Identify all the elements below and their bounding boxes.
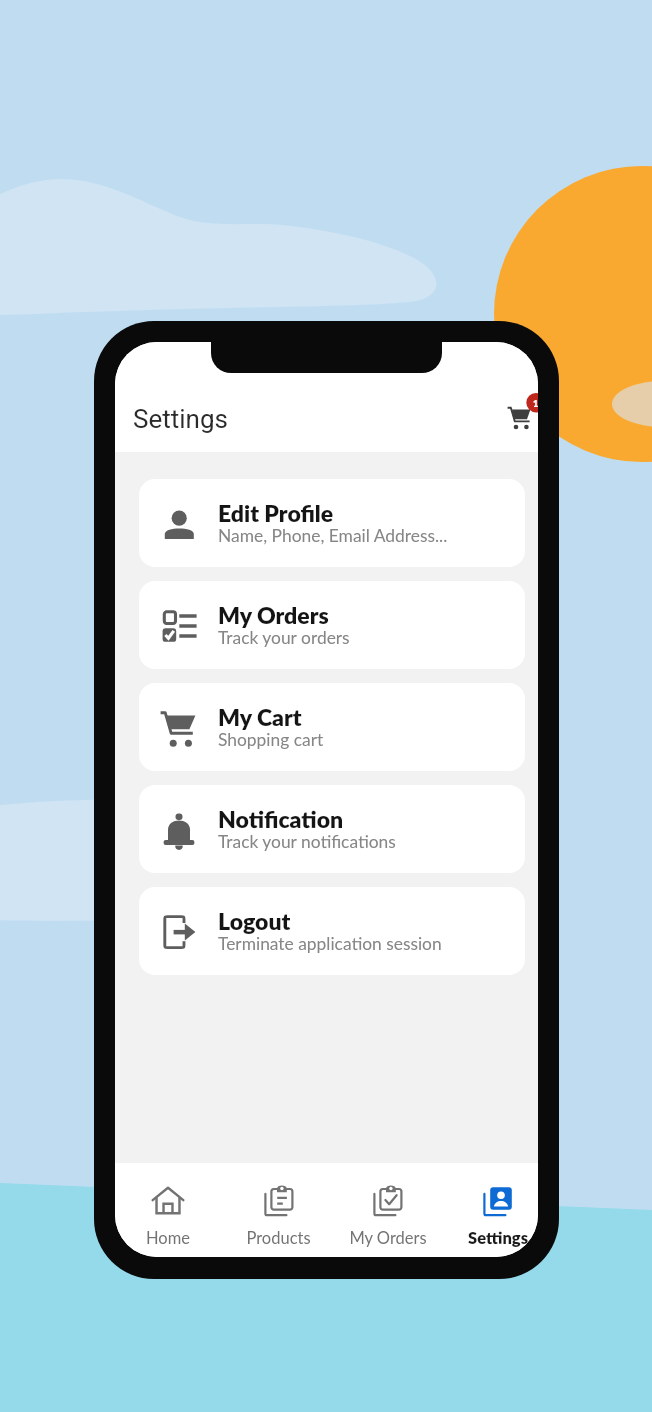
- button[interactable]: Home: [116, 1163, 220, 1257]
- button[interactable]: My Orders: [139, 581, 525, 669]
- button[interactable]: Edit Profile: [139, 479, 525, 567]
- button[interactable]: Notification: [139, 785, 525, 873]
- staticText: Home: [146, 1228, 190, 1248]
- staticText: My Cart: [218, 703, 302, 731]
- staticText: Edit Profile: [218, 499, 334, 527]
- staticText: Terminate application session: [218, 933, 442, 954]
- staticText: My Orders: [218, 601, 329, 629]
- button[interactable]: My Cart: [139, 683, 525, 771]
- staticText: Settings: [468, 1228, 528, 1248]
- button[interactable]: Shopping cart: [495, 393, 538, 441]
- staticText: Products: [246, 1228, 311, 1248]
- staticText: Shopping cart: [218, 729, 324, 750]
- staticText: Settings: [133, 404, 228, 434]
- staticText: Notification: [218, 805, 344, 833]
- button[interactable]: Settings: [446, 1163, 538, 1257]
- staticText: My Orders: [349, 1228, 427, 1248]
- button[interactable]: Products: [226, 1163, 330, 1257]
- staticText: Logout: [218, 907, 291, 935]
- button[interactable]: My Orders: [336, 1163, 440, 1257]
- staticText: Track your orders: [218, 627, 350, 648]
- button[interactable]: Logout: [139, 887, 525, 975]
- staticText: Track your notifications: [218, 831, 396, 852]
- staticText: 1: [533, 398, 538, 409]
- staticText: Name, Phone, Email Address...: [218, 525, 448, 546]
